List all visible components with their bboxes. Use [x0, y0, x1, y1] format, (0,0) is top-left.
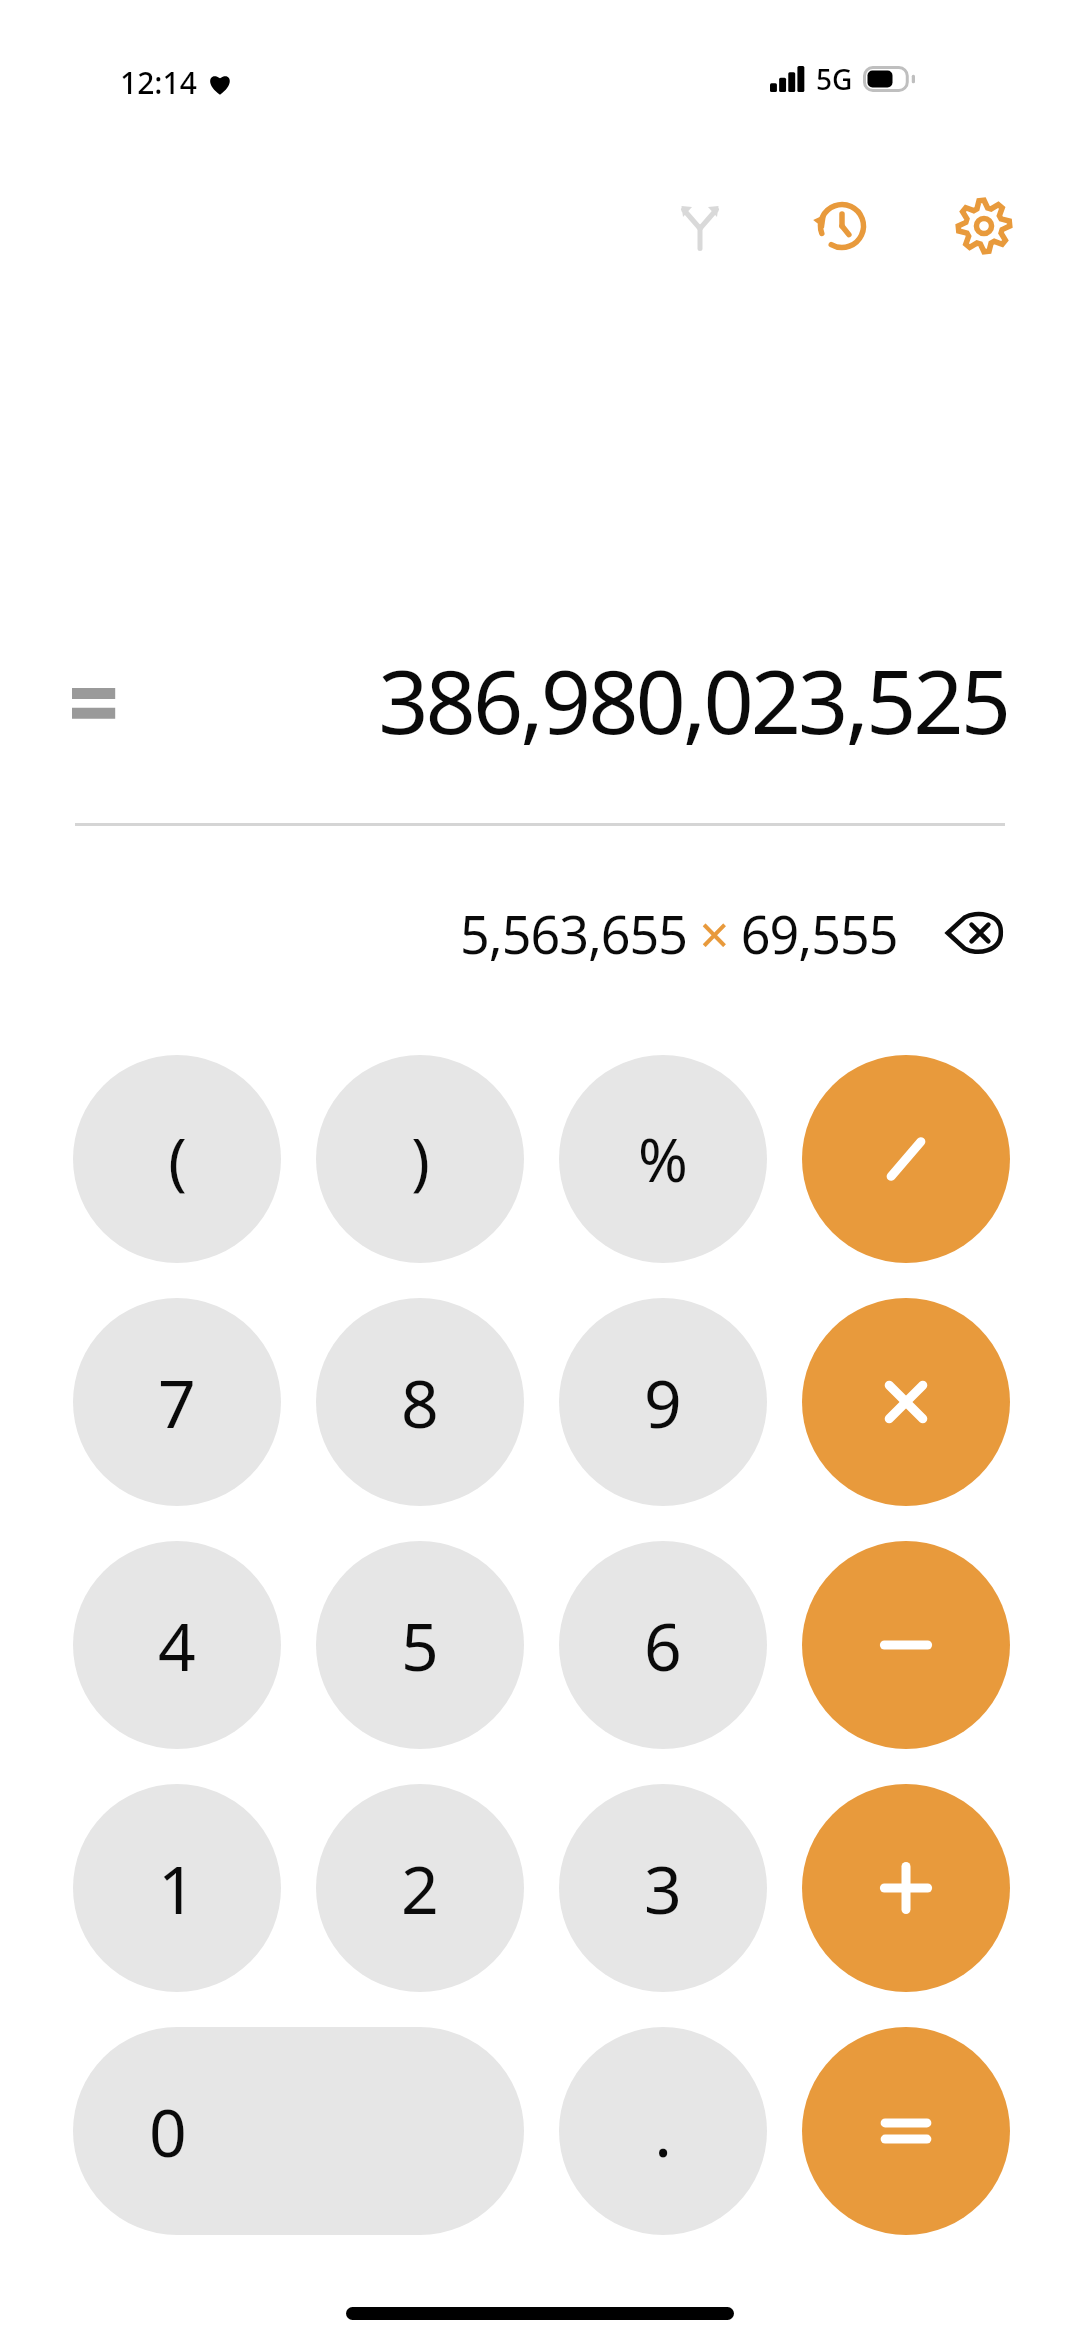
- button[interactable]: Plus: [802, 1784, 1010, 1992]
- staticText: 5G: [816, 60, 853, 98]
- staticText: 0: [149, 2086, 187, 2176]
- staticText: (: [168, 1117, 187, 1201]
- button[interactable]: Divide: [802, 1055, 1010, 1263]
- staticText: 7: [158, 1357, 196, 1447]
- button[interactable]: (: [73, 1055, 281, 1263]
- button[interactable]: Minus: [802, 1541, 1010, 1749]
- button[interactable]: 1: [73, 1784, 281, 1992]
- button[interactable]: Multiply: [802, 1298, 1010, 1506]
- staticText: .: [654, 2086, 672, 2176]
- staticText: 9: [644, 1357, 682, 1447]
- staticText: 3: [644, 1843, 682, 1933]
- button[interactable]: Settings: [936, 178, 1032, 274]
- button[interactable]: 6: [559, 1541, 767, 1749]
- staticText: 1: [158, 1843, 196, 1933]
- staticText: 2: [401, 1843, 439, 1933]
- button[interactable]: 3: [559, 1784, 767, 1992]
- button[interactable]: 8: [316, 1298, 524, 1506]
- button[interactable]: ): [316, 1055, 524, 1263]
- button[interactable]: 7: [73, 1298, 281, 1506]
- button[interactable]: 0: [73, 2027, 524, 2235]
- button[interactable]: Split: [652, 178, 748, 274]
- button[interactable]: 2: [316, 1784, 524, 1992]
- staticText: 5: [401, 1600, 439, 1690]
- button[interactable]: .: [559, 2027, 767, 2235]
- staticText: 6: [644, 1600, 682, 1690]
- button[interactable]: Backspace: [932, 890, 1018, 976]
- staticText: 8: [401, 1357, 439, 1447]
- button[interactable]: 9: [559, 1298, 767, 1506]
- button[interactable]: 5: [316, 1541, 524, 1749]
- staticText: 12:14: [120, 62, 197, 103]
- staticText: ): [411, 1117, 430, 1201]
- staticText: 5,563,655 × 69,555: [460, 898, 898, 969]
- button[interactable]: Equals: [802, 2027, 1010, 2235]
- button[interactable]: History: [794, 178, 890, 274]
- staticText: 386,980,023,525: [140, 640, 1008, 760]
- button[interactable]: 4: [73, 1541, 281, 1749]
- staticText: 4: [158, 1600, 196, 1690]
- button[interactable]: %: [559, 1055, 767, 1263]
- staticText: %: [638, 1118, 688, 1200]
